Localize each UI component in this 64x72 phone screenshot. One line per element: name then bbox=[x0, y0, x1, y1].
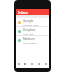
staticText: Dropbox bbox=[23, 28, 36, 32]
button[interactable]: Nav bbox=[42, 60, 49, 68]
staticText: Medium bbox=[23, 37, 35, 41]
button[interactable]: Medium bbox=[16, 36, 49, 44]
button[interactable]: Nav bbox=[22, 60, 28, 68]
button[interactable]: Nav bbox=[16, 60, 22, 68]
button[interactable]: Nav bbox=[35, 60, 42, 68]
button[interactable]: Dropbox bbox=[16, 27, 49, 35]
staticText: Google bbox=[23, 19, 34, 23]
staticText: Inbox bbox=[18, 10, 28, 15]
button[interactable]: Nav bbox=[28, 60, 35, 68]
staticText: Daily digest bbox=[23, 41, 37, 44]
button[interactable]: Google bbox=[16, 18, 49, 26]
staticText: Your files bbox=[23, 32, 34, 35]
staticText: Security alert bbox=[23, 23, 39, 26]
